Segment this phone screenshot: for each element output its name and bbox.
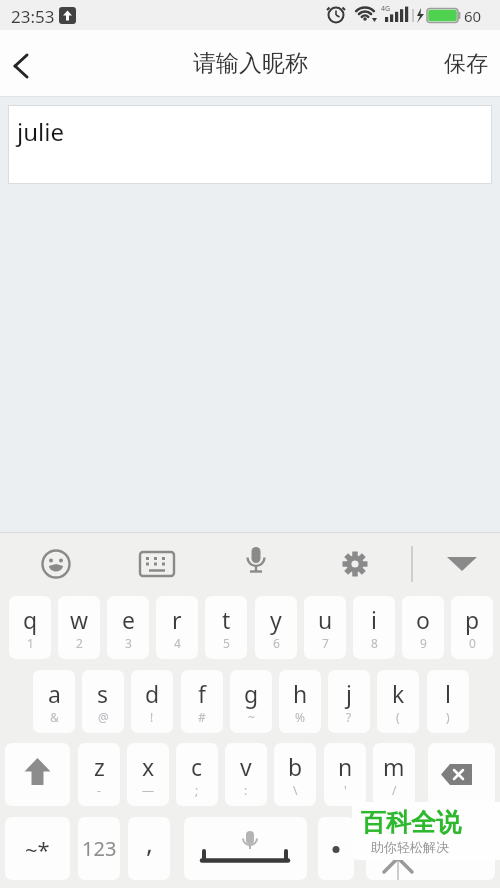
button[interactable] — [139, 546, 175, 582]
staticText: f — [198, 678, 206, 709]
staticText: h — [293, 678, 308, 709]
button[interactable]: z — [78, 743, 120, 806]
staticText: / — [392, 782, 397, 798]
staticText: julie — [17, 115, 64, 148]
button[interactable] — [238, 544, 274, 580]
staticText: 4G — [381, 4, 391, 14]
button[interactable]: v — [225, 743, 267, 806]
button[interactable]: p — [451, 596, 493, 659]
staticText: c — [191, 751, 203, 782]
button[interactable]: 123 — [78, 817, 120, 880]
staticText: ) — [446, 709, 450, 725]
button[interactable]: q — [9, 596, 51, 659]
button[interactable]: e — [107, 596, 149, 659]
staticText: ~ — [248, 709, 255, 725]
button[interactable]: i — [353, 596, 395, 659]
button[interactable]: j — [328, 670, 370, 733]
staticText: p — [465, 604, 480, 635]
staticText: & — [50, 709, 59, 725]
staticText: b — [288, 751, 303, 782]
staticText: i — [371, 604, 377, 635]
staticText: 7 — [322, 635, 329, 651]
button[interactable]: u — [304, 596, 346, 659]
button[interactable]: l — [427, 670, 469, 733]
staticText: d — [145, 678, 160, 709]
button[interactable] — [38, 546, 74, 582]
staticText: l — [445, 678, 451, 709]
button[interactable]: y — [255, 596, 297, 659]
staticText: z — [94, 751, 105, 782]
staticText: 1 — [27, 635, 34, 651]
staticText: y — [270, 604, 282, 635]
staticText: e — [122, 604, 135, 635]
button[interactable]: julie — [8, 105, 492, 184]
staticText: % — [295, 709, 305, 725]
button[interactable]: m — [373, 743, 415, 806]
button[interactable]: k — [377, 670, 419, 733]
staticText: ( — [396, 709, 400, 725]
button[interactable]: h — [279, 670, 321, 733]
button[interactable]: o — [402, 596, 444, 659]
staticText: ! — [150, 709, 154, 725]
staticText: o — [416, 604, 430, 635]
button[interactable] — [184, 817, 307, 880]
staticText: 请输入昵称 — [193, 49, 308, 78]
button[interactable] — [318, 817, 354, 880]
button[interactable] — [337, 546, 373, 582]
button[interactable]: b — [274, 743, 316, 806]
staticText: - — [97, 782, 101, 798]
staticText: @ — [98, 709, 109, 725]
staticText: 4 — [174, 635, 181, 651]
button[interactable] — [366, 817, 495, 880]
button[interactable]: a — [33, 670, 75, 733]
button[interactable] — [6, 50, 38, 82]
button[interactable]: r — [156, 596, 198, 659]
button[interactable]: ~* — [5, 817, 70, 880]
button[interactable]: c — [176, 743, 218, 806]
button[interactable]: n — [324, 743, 366, 806]
button[interactable]: w — [58, 596, 100, 659]
staticText: 0 — [469, 635, 476, 651]
staticText: 助你轻松解决 — [371, 839, 449, 855]
button[interactable]: 保存 — [432, 40, 500, 88]
button[interactable]: x — [127, 743, 169, 806]
staticText: ; — [195, 782, 199, 798]
staticText: 8 — [371, 635, 378, 651]
staticText: g — [244, 678, 259, 709]
button[interactable]: f — [181, 670, 223, 733]
staticText: u — [318, 604, 333, 635]
staticText: \ — [293, 782, 298, 798]
staticText: n — [338, 751, 353, 782]
staticText: 3 — [125, 635, 132, 651]
button[interactable]: t — [205, 596, 247, 659]
staticText: 9 — [420, 635, 427, 651]
staticText: q — [23, 604, 38, 635]
staticText: 5 — [223, 635, 230, 651]
staticText: 百科全说 — [361, 807, 461, 838]
staticText: — — [142, 782, 155, 798]
staticText: v — [240, 751, 252, 782]
staticText: : — [244, 782, 248, 798]
staticText: 6 — [273, 635, 280, 651]
staticText: j — [346, 678, 352, 709]
staticText: k — [392, 678, 405, 709]
staticText: ~* — [25, 834, 50, 864]
staticText: 2 — [76, 635, 83, 651]
button[interactable]: d — [131, 670, 173, 733]
staticText: # — [198, 709, 206, 725]
staticText: 保存 — [444, 50, 488, 78]
staticText: m — [383, 751, 405, 782]
button[interactable]: s — [82, 670, 124, 733]
staticText: x — [142, 751, 155, 782]
button[interactable]: , — [128, 817, 170, 880]
button[interactable] — [428, 743, 495, 806]
button[interactable] — [444, 552, 480, 576]
button[interactable]: g — [230, 670, 272, 733]
staticText: s — [97, 678, 109, 709]
staticText: 123 — [82, 835, 117, 862]
staticText: 60 — [464, 6, 482, 26]
staticText: ? — [346, 709, 352, 725]
staticText: a — [48, 678, 61, 709]
staticText: ' — [344, 782, 347, 798]
button[interactable] — [5, 743, 70, 806]
